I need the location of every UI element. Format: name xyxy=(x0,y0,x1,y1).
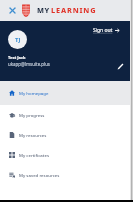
staticText: My certificates xyxy=(19,152,49,158)
staticText: MY xyxy=(37,5,50,15)
staticText: My resources xyxy=(19,132,47,138)
staticText: My progress xyxy=(19,112,45,118)
button[interactable]: My saved resources xyxy=(0,165,130,185)
button[interactable]: Close xyxy=(7,5,18,16)
staticText: ukapp@lmsuite.plus xyxy=(8,61,50,67)
staticText: My saved resources xyxy=(19,172,60,178)
staticText: LEARNING xyxy=(51,5,97,15)
staticText: Test Jack xyxy=(8,55,26,60)
button[interactable]: My certificates xyxy=(0,145,130,165)
button[interactable]: My progress xyxy=(0,105,130,125)
button[interactable]: Edit profile xyxy=(116,62,125,71)
button[interactable]: My homepage xyxy=(0,81,130,105)
staticText: Sign out xyxy=(93,27,113,34)
button[interactable]: My resources xyxy=(0,125,130,145)
staticText: My homepage xyxy=(19,90,49,96)
staticText: TJ xyxy=(15,36,21,44)
button[interactable]: Sign out xyxy=(93,27,120,34)
